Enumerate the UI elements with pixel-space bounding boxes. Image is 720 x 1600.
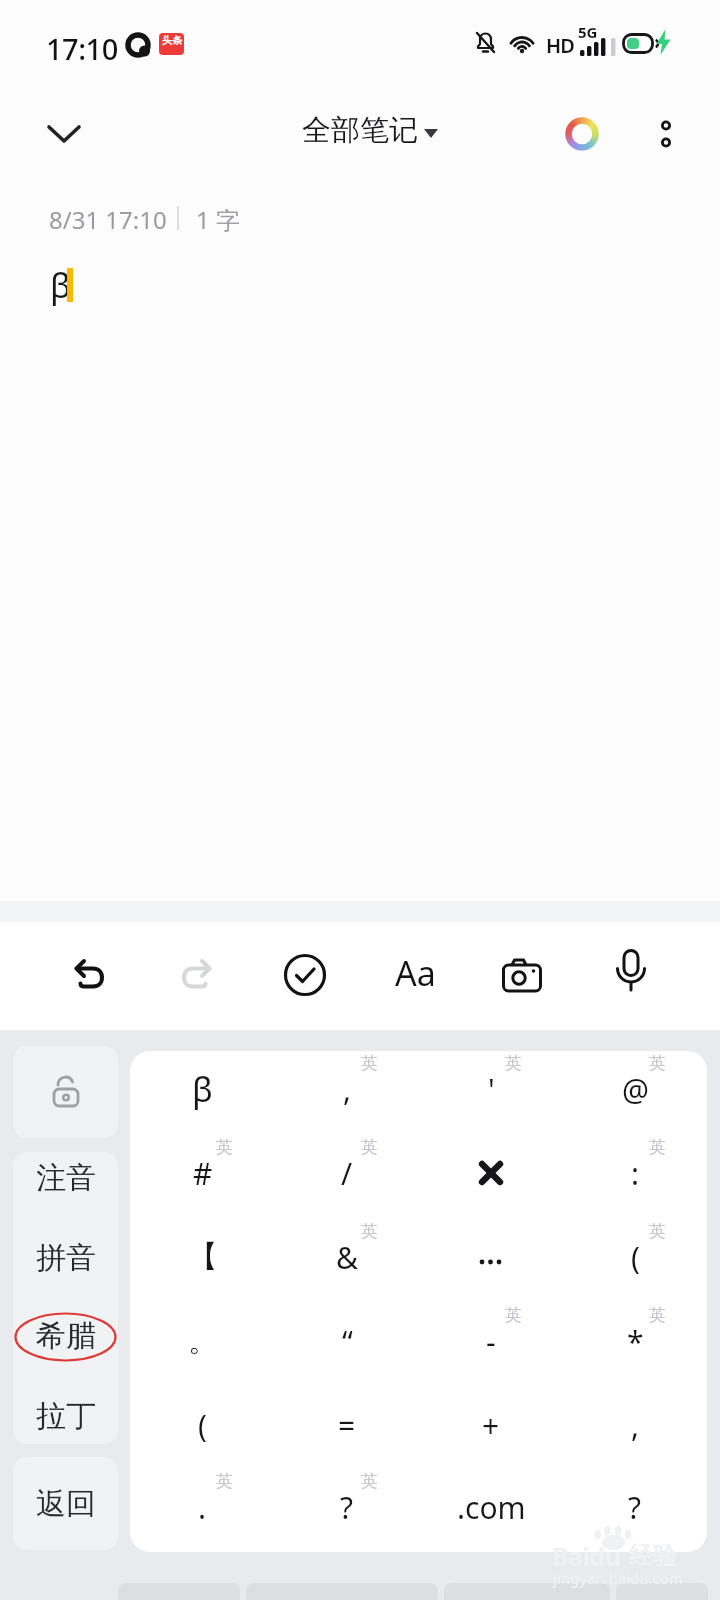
button[interactable] [13, 1046, 118, 1138]
button[interactable] [604, 944, 658, 998]
staticText: 希腊 [36, 1317, 96, 1355]
button[interactable]: 。 [130, 1299, 275, 1383]
staticText: 拼音 [36, 1239, 96, 1277]
button[interactable]: “ [275, 1299, 419, 1383]
staticText: & [336, 1237, 358, 1278]
staticText: - [486, 1321, 496, 1362]
button[interactable]: ' [419, 1051, 563, 1131]
staticText: ' [488, 1069, 495, 1110]
button[interactable]: & [275, 1215, 419, 1299]
staticText: β [192, 1066, 213, 1112]
staticText: 1 字 [196, 203, 240, 236]
button[interactable]: * [563, 1299, 707, 1383]
staticText: 。 [188, 1322, 218, 1360]
button[interactable]: ( [130, 1383, 275, 1467]
button[interactable]: Aa [384, 942, 446, 1004]
staticText: # [193, 1153, 213, 1194]
button[interactable]: ( [563, 1215, 707, 1299]
staticText: 英 [505, 1053, 522, 1074]
button[interactable]: ? [563, 1467, 707, 1548]
staticText: 头条 [162, 34, 182, 47]
button[interactable]: / [275, 1131, 419, 1215]
staticText: 英 [361, 1053, 378, 1074]
staticText: 注音 [36, 1159, 96, 1197]
staticText: = [338, 1405, 356, 1446]
staticText: Aa [395, 950, 436, 996]
staticText: , [631, 1405, 640, 1446]
staticText: 拉丁 [36, 1397, 96, 1435]
staticText: 【 [188, 1238, 218, 1276]
button[interactable]: ? [275, 1467, 419, 1548]
button[interactable]: 返回 [13, 1457, 118, 1550]
button[interactable] [62, 948, 116, 1002]
staticText: 8/31 17:10 [49, 203, 167, 236]
staticText: .com [457, 1487, 526, 1528]
button[interactable]: 注音 [13, 1152, 118, 1214]
staticText: @ [622, 1069, 649, 1110]
staticText: 5G [578, 22, 598, 42]
button[interactable]: + [419, 1383, 563, 1467]
button[interactable]: 全部笔记 [0, 112, 720, 156]
button[interactable]: . [130, 1467, 275, 1548]
button[interactable]: = [275, 1383, 419, 1467]
staticText: 17:10 [46, 29, 118, 68]
button[interactable]: 拉丁 [13, 1380, 118, 1444]
staticText: 英 [649, 1053, 666, 1074]
button[interactable] [34, 104, 94, 164]
button[interactable] [419, 1215, 563, 1299]
button[interactable] [170, 948, 224, 1002]
staticText: ( [631, 1237, 640, 1278]
staticText: 返回 [36, 1485, 96, 1523]
button[interactable] [495, 948, 549, 1002]
button[interactable] [419, 1131, 563, 1215]
button[interactable]: : [563, 1131, 707, 1215]
button[interactable]: @ [563, 1051, 707, 1131]
staticText: HD [546, 32, 575, 59]
staticText: 全部笔记 [302, 112, 418, 149]
staticText: jingyan.baidu.com [553, 1568, 683, 1588]
button[interactable] [638, 106, 694, 162]
staticText: . [198, 1487, 207, 1528]
button[interactable]: 希腊 [13, 1300, 118, 1372]
staticText: 英 [649, 1305, 666, 1326]
staticText: ? [628, 1487, 642, 1528]
staticText: 英 [216, 1471, 233, 1492]
staticText: : [631, 1153, 640, 1194]
staticText: “ [342, 1321, 353, 1362]
button[interactable]: # [130, 1131, 275, 1215]
staticText: 英 [216, 1137, 233, 1158]
button[interactable]: .com [419, 1467, 563, 1548]
staticText: β [50, 262, 71, 308]
staticText: 英 [649, 1137, 666, 1158]
button[interactable]: 拼音 [13, 1222, 118, 1294]
staticText: 英 [505, 1305, 522, 1326]
staticText: / [341, 1153, 353, 1194]
staticText: 经验 [629, 1541, 677, 1571]
staticText: 英 [361, 1221, 378, 1242]
button[interactable]: β [130, 1051, 275, 1131]
button[interactable] [278, 948, 332, 1002]
button[interactable]: , [275, 1051, 419, 1131]
button[interactable]: , [563, 1383, 707, 1467]
staticText: + [482, 1405, 500, 1446]
staticText: * [627, 1321, 644, 1362]
staticText: ? [340, 1487, 354, 1528]
staticText: 英 [361, 1471, 378, 1492]
staticText: , [343, 1069, 352, 1110]
staticText: ( [198, 1405, 207, 1446]
button[interactable]: - [419, 1299, 563, 1383]
staticText: Baidu [552, 1539, 621, 1573]
staticText: 英 [361, 1137, 378, 1158]
button[interactable]: 【 [130, 1215, 275, 1299]
staticText: 英 [649, 1221, 666, 1242]
button[interactable] [554, 106, 610, 162]
